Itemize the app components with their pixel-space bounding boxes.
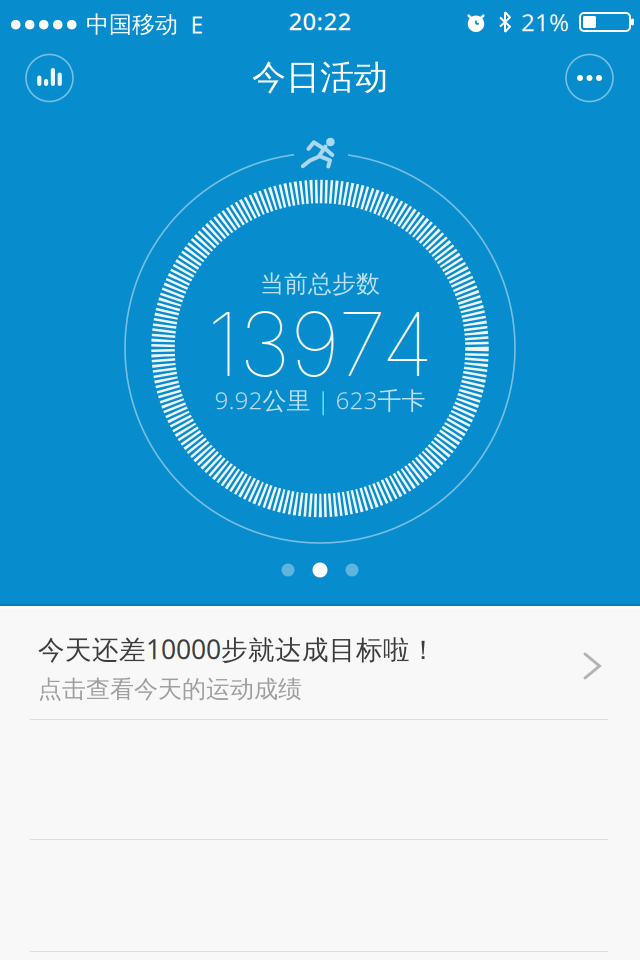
- staticText: E: [190, 9, 203, 40]
- staticText: 21%: [521, 6, 569, 38]
- staticText: 13974: [207, 291, 433, 397]
- staticText: 20:22: [288, 5, 351, 37]
- staticText: 点击查看今天的运动成绩: [38, 674, 302, 704]
- staticText: 中国移动: [86, 10, 178, 39]
- staticText: 当前总步数: [260, 269, 380, 299]
- staticText: 今日活动: [252, 56, 388, 99]
- staticText: 今天还差10000步就达成目标啦！: [38, 631, 437, 667]
- staticText: 9.92公里 | 623千卡: [214, 384, 425, 416]
